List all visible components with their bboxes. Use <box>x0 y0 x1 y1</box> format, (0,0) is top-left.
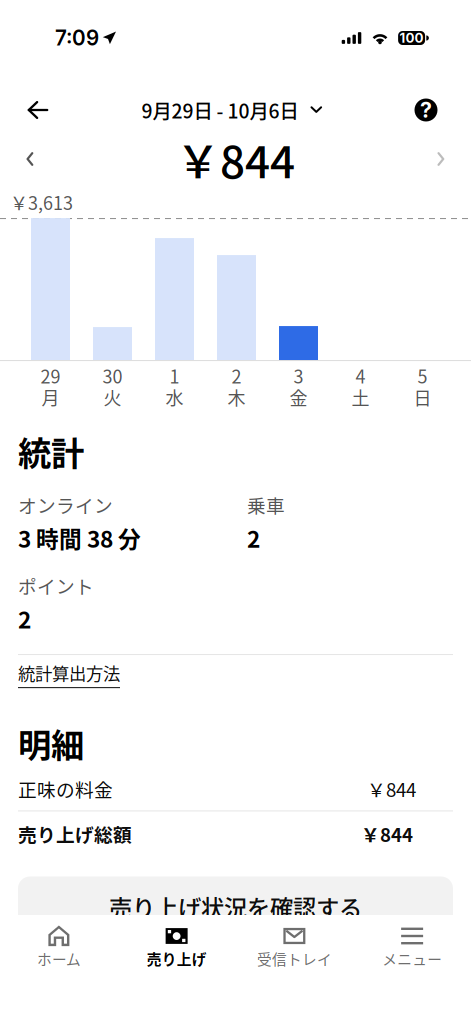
staticText: 日 <box>413 384 431 410</box>
staticText: ￥844 <box>361 820 413 847</box>
staticText: 2 <box>247 521 260 554</box>
staticText: 土 <box>351 384 369 410</box>
staticText: 統計 <box>18 427 84 475</box>
staticText: 7:09 <box>55 25 99 50</box>
button[interactable]: 売り上げ <box>118 915 236 979</box>
button[interactable]: 次の週 <box>419 139 463 179</box>
staticText: 3 時間 38 分 <box>18 521 141 554</box>
staticText: 4 <box>355 362 365 389</box>
staticText: 2 <box>18 602 31 635</box>
staticText: 売り上げ総額 <box>18 820 132 847</box>
button[interactable]: 統計算出方法 <box>18 660 120 688</box>
staticText: 金 <box>289 384 307 410</box>
staticText: ポイント <box>18 572 94 599</box>
staticText: 1 <box>169 362 179 389</box>
staticText: 月 <box>41 384 59 410</box>
staticText: ￥844 <box>176 127 295 191</box>
button[interactable]: メニュー <box>353 915 471 979</box>
staticText: 水 <box>165 384 183 410</box>
staticText: 売り上げ状況を確認する <box>109 890 362 924</box>
staticText: オンライン <box>18 491 113 518</box>
staticText: 木 <box>227 384 245 410</box>
button[interactable]: ヘルプ <box>402 90 450 130</box>
button[interactable]: 戻る <box>14 90 62 130</box>
staticText: 正味の料金 <box>18 775 113 802</box>
staticText: ￥3,613 <box>10 189 73 215</box>
staticText: ホーム <box>37 948 81 969</box>
button[interactable]: 受信トレイ <box>235 915 353 979</box>
staticText: メニュー <box>382 948 442 969</box>
staticText: 29 <box>40 362 60 389</box>
staticText: 明細 <box>18 719 84 767</box>
button[interactable]: 9月29日 - 10月6日 <box>135 90 328 130</box>
button[interactable]: 売り上げ状況を確認する <box>0 876 471 966</box>
staticText: 30 <box>102 362 122 389</box>
staticText: ￥844 <box>367 775 416 802</box>
staticText: 乗車 <box>247 491 285 518</box>
staticText: 売り上げ <box>147 948 207 969</box>
staticText: 火 <box>103 384 121 410</box>
staticText: 9月29日 - 10月6日 <box>141 96 298 124</box>
staticText: ? <box>420 97 432 123</box>
staticText: 受信トレイ <box>257 948 332 969</box>
staticText: 5 <box>417 362 427 389</box>
staticText: 2 <box>231 362 241 389</box>
staticText: 3 <box>293 362 303 389</box>
button[interactable]: ホーム <box>0 915 118 979</box>
staticText: 100 <box>400 30 424 46</box>
button[interactable]: 前の週 <box>8 139 52 179</box>
staticText: 統計算出方法 <box>18 660 120 685</box>
